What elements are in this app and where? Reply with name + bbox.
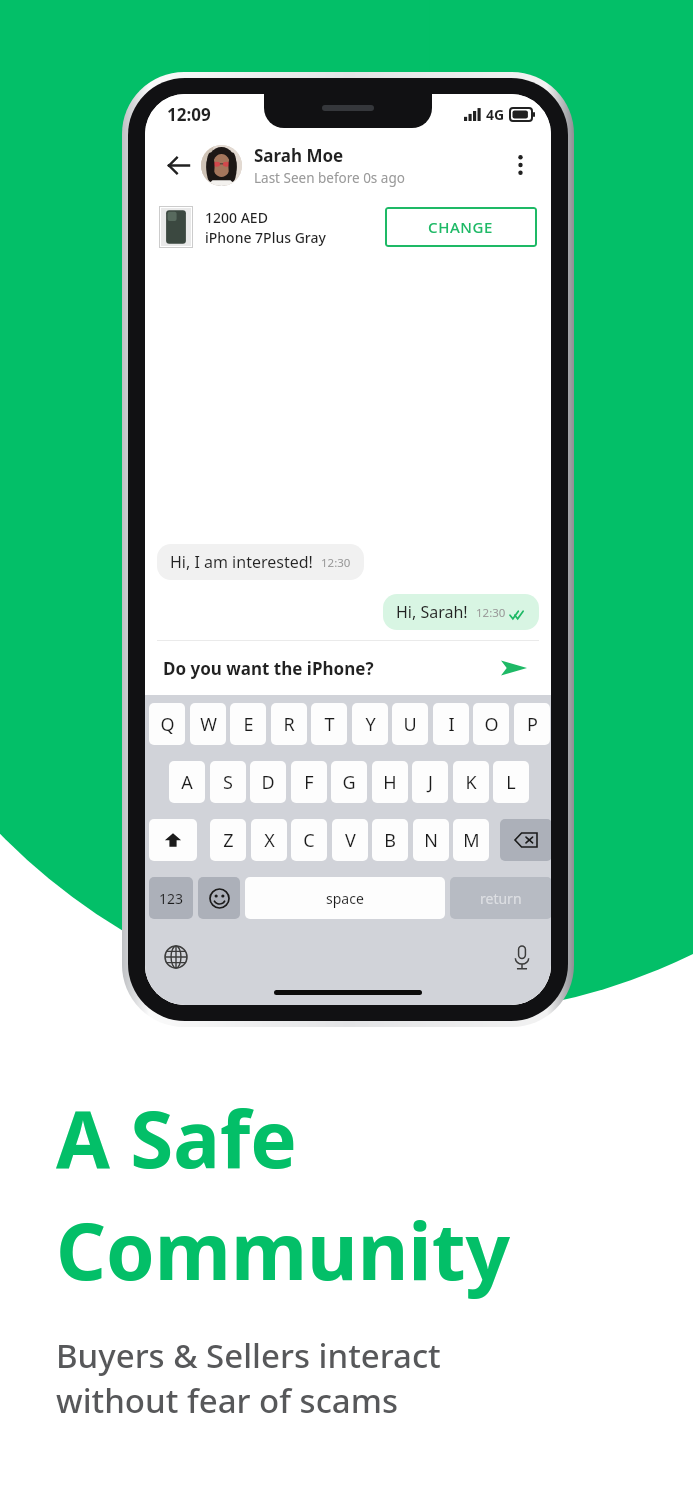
button[interactable]: G xyxy=(331,761,367,803)
button[interactable]: D xyxy=(250,761,286,803)
staticText: 12:30 xyxy=(321,555,351,571)
button[interactable]: B xyxy=(372,819,408,861)
staticText: Buyers & Sellers interact xyxy=(56,1333,441,1378)
button[interactable]: P xyxy=(514,703,550,745)
button[interactable]: Z xyxy=(210,819,246,861)
button[interactable]: T xyxy=(311,703,347,745)
button[interactable]: Send xyxy=(495,649,533,687)
staticText: H xyxy=(383,770,397,795)
button[interactable]: O xyxy=(473,703,509,745)
staticText: iPhone 7Plus Gray xyxy=(205,228,326,247)
button[interactable]: R xyxy=(271,703,307,745)
staticText: Y xyxy=(365,712,376,737)
staticText: Q xyxy=(160,712,175,737)
staticText: Hi, Sarah! xyxy=(396,601,468,623)
button[interactable]: F xyxy=(291,761,327,803)
button[interactable]: U xyxy=(392,703,428,745)
staticText: B xyxy=(384,828,396,853)
staticText: CHANGE xyxy=(428,217,494,237)
staticText: 1200 AED xyxy=(205,208,268,227)
staticText: V xyxy=(345,828,356,853)
staticText: Hi, I am interested! xyxy=(170,551,313,573)
button[interactable]: N xyxy=(413,819,449,861)
button[interactable]: More options xyxy=(503,148,537,182)
staticText: J xyxy=(428,770,433,795)
button[interactable]: Backspace xyxy=(500,819,551,861)
staticText: S xyxy=(223,770,233,795)
staticText: D xyxy=(261,770,275,795)
staticText: return xyxy=(480,889,522,908)
button[interactable]: C xyxy=(291,819,327,861)
staticText: Community xyxy=(56,1197,511,1303)
button[interactable]: space xyxy=(245,877,445,919)
button[interactable]: Shift xyxy=(149,819,197,861)
staticText: 12:30 xyxy=(476,605,506,621)
button[interactable]: X xyxy=(251,819,287,861)
button[interactable]: H xyxy=(372,761,408,803)
staticText: X xyxy=(264,828,275,853)
staticText: Do you want the iPhone? xyxy=(163,657,495,680)
staticText: 4G xyxy=(486,105,505,124)
staticText: A xyxy=(181,770,193,795)
button[interactable]: S xyxy=(210,761,246,803)
button[interactable]: 123 xyxy=(149,877,193,919)
button[interactable]: A xyxy=(169,761,205,803)
staticText: space xyxy=(326,889,364,908)
button[interactable]: K xyxy=(453,761,489,803)
staticText: A Safe xyxy=(56,1085,297,1191)
button[interactable]: Change keyboard language xyxy=(159,940,193,974)
button[interactable]: L xyxy=(493,761,529,803)
staticText: U xyxy=(403,712,417,737)
button[interactable]: return xyxy=(450,877,551,919)
button[interactable]: CHANGE xyxy=(385,207,537,247)
staticText: R xyxy=(283,712,295,737)
staticText: K xyxy=(465,770,477,795)
staticText: E xyxy=(243,712,254,737)
staticText: 123 xyxy=(159,889,184,908)
staticText: N xyxy=(424,828,438,853)
button[interactable]: M xyxy=(453,819,489,861)
staticText: T xyxy=(324,712,335,737)
staticText: Sarah Moe xyxy=(254,144,344,167)
staticText: L xyxy=(506,770,516,795)
staticText: 12:09 xyxy=(167,103,211,126)
button[interactable]: Q xyxy=(149,703,185,745)
staticText: P xyxy=(527,712,538,737)
staticText: I xyxy=(448,712,455,737)
staticText: Last Seen before 0s ago xyxy=(254,169,405,187)
button[interactable]: W xyxy=(190,703,226,745)
staticText: W xyxy=(200,712,217,737)
button[interactable]: E xyxy=(230,703,266,745)
staticText: without fear of scams xyxy=(56,1378,399,1423)
button[interactable]: Emoji xyxy=(198,877,240,919)
button[interactable]: Voice input xyxy=(505,940,539,974)
button[interactable]: V xyxy=(332,819,368,861)
staticText: Z xyxy=(223,828,234,853)
button[interactable]: Y xyxy=(352,703,388,745)
staticText: G xyxy=(342,770,356,795)
button[interactable]: J xyxy=(412,761,448,803)
button[interactable]: I xyxy=(433,703,469,745)
staticText: F xyxy=(304,770,314,795)
button[interactable]: Back xyxy=(159,146,197,184)
staticText: O xyxy=(484,712,499,737)
staticText: M xyxy=(463,828,480,853)
staticText: C xyxy=(303,828,315,853)
